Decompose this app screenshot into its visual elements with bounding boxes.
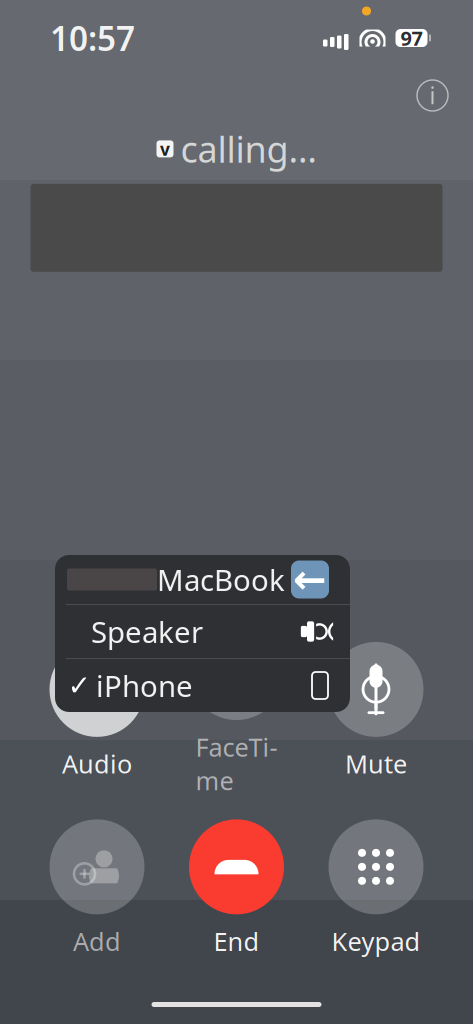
staticText: Speaker: [91, 612, 203, 651]
button[interactable]: Audio: [47, 642, 147, 780]
staticText: ✓: [67, 670, 90, 701]
button[interactable]: Keypad: [326, 819, 426, 958]
staticText: ←: [293, 557, 327, 602]
staticText: ?: [223, 655, 236, 690]
button[interactable]: Speaker: [55, 605, 350, 658]
button[interactable]: MacBook: [55, 555, 350, 604]
staticText: 10:57: [50, 16, 135, 60]
staticText: FaceTime: [195, 730, 277, 797]
button[interactable]: Add: [47, 819, 147, 958]
button[interactable]: Mute: [326, 642, 426, 780]
staticText: Add: [73, 924, 121, 958]
staticText: End: [213, 924, 259, 958]
staticText: v: [160, 137, 170, 160]
button[interactable]: Call details: [417, 80, 448, 111]
staticText: calling…: [180, 125, 316, 173]
staticText: iPhone: [96, 666, 193, 705]
staticText: Keypad: [331, 924, 420, 958]
staticText: 97: [400, 25, 422, 51]
button[interactable]: ✓: [55, 659, 350, 712]
button[interactable]: End: [186, 819, 286, 958]
staticText: i: [429, 80, 435, 110]
button[interactable]: ?: [186, 625, 286, 797]
staticText: Mute: [345, 747, 407, 780]
staticText: MacBook: [157, 560, 285, 599]
staticText: Audio: [62, 747, 132, 780]
